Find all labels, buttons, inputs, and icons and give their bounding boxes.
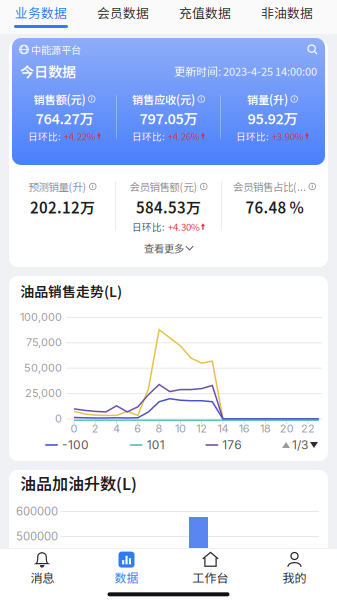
staticText: 非油数据 <box>261 3 313 22</box>
staticText: 4 <box>113 422 120 435</box>
staticText: 8 <box>156 422 163 435</box>
staticText: 业务数据 <box>15 3 67 22</box>
staticText: 18 <box>260 422 271 435</box>
staticText: 中能源平台 <box>29 42 81 57</box>
staticText: 100,000 <box>20 310 62 323</box>
button[interactable]: 我的 <box>252 549 336 589</box>
staticText: 25,000 <box>25 386 62 400</box>
staticText: 14 <box>217 422 228 435</box>
staticText: 600000 <box>16 505 58 518</box>
staticText: 今日数据 <box>20 61 76 81</box>
staticText: 76.48 % <box>245 196 303 218</box>
button[interactable]: 非油数据 <box>246 0 328 34</box>
staticText: 50,000 <box>24 361 62 374</box>
staticText: 584.53万 <box>136 196 201 218</box>
staticText: 0 <box>70 422 77 435</box>
staticText: 会员销售占比(... <box>233 179 306 194</box>
button[interactable]: 数据 <box>84 549 168 589</box>
staticText: 充值数据 <box>179 3 231 22</box>
staticText: +4.30% <box>168 219 200 233</box>
staticText: 消息 <box>30 569 54 586</box>
staticText: +3.90% <box>272 129 304 143</box>
staticText: 销售额(元) <box>33 91 85 107</box>
staticText: 工作台 <box>192 569 228 586</box>
staticText: 22 <box>301 422 315 435</box>
staticText: 16 <box>239 422 250 435</box>
staticText: 预测销量(升) <box>28 179 86 194</box>
staticText: 数据 <box>114 569 138 586</box>
staticText: 油品销售走势(L) <box>20 281 122 301</box>
staticText: 202.12万 <box>30 196 95 218</box>
staticText: 更新时间: 2023-4-25 14:00:00 <box>174 63 317 79</box>
staticText: 101 <box>147 438 165 452</box>
staticText: 6 <box>134 422 141 435</box>
staticText: 销量(升) <box>247 91 288 107</box>
staticText: +4.26% <box>168 129 200 143</box>
button[interactable]: 1/3 <box>282 437 318 453</box>
staticText: 75,000 <box>26 336 62 349</box>
staticText: 日环比: <box>132 219 167 233</box>
staticText: 20 <box>280 422 294 435</box>
staticText: 我的 <box>282 569 306 586</box>
staticText: 400000 <box>16 555 58 568</box>
staticText: 12 <box>196 422 207 435</box>
button[interactable]: 会员数据 <box>82 0 164 34</box>
staticText: 2 <box>92 422 99 435</box>
staticText: 会员数据 <box>97 3 149 22</box>
staticText: 500000 <box>16 530 58 543</box>
staticText: 日环比: <box>236 129 271 143</box>
button[interactable]: 查看更多 <box>108 239 228 257</box>
staticText: 797.05万 <box>139 108 197 128</box>
staticText: 查看更多 <box>144 240 184 256</box>
button[interactable]: 工作台 <box>168 549 252 589</box>
staticText: 95.92万 <box>247 108 297 128</box>
staticText: 日环比: <box>132 129 167 143</box>
staticText: 10 <box>175 422 186 435</box>
staticText: 会员销售额(元) <box>129 179 197 194</box>
staticText: +4.22% <box>64 129 96 143</box>
staticText: -100 <box>62 438 89 452</box>
staticText: 日环比: <box>28 129 63 143</box>
staticText: 0 <box>55 412 62 425</box>
staticText: 1/3 <box>292 438 308 452</box>
staticText: 销售应收(元) <box>132 91 195 107</box>
staticText: 油品加油升数(L) <box>20 471 137 495</box>
button[interactable]: 业务数据 <box>0 0 82 34</box>
staticText: 764.27万 <box>35 108 93 128</box>
button[interactable]: 消息 <box>0 549 84 589</box>
staticText: 176 <box>222 438 241 452</box>
button[interactable]: 充值数据 <box>164 0 246 34</box>
